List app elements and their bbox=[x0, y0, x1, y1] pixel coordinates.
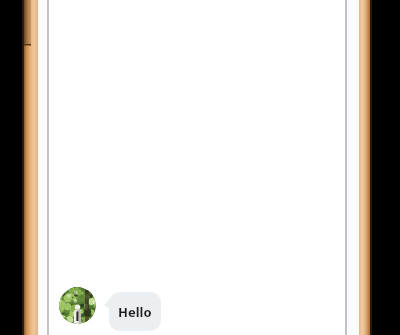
button[interactable]: Hello bbox=[104, 292, 161, 331]
button[interactable]: Contact avatar bbox=[59, 287, 96, 324]
staticText: Hello bbox=[118, 303, 152, 321]
